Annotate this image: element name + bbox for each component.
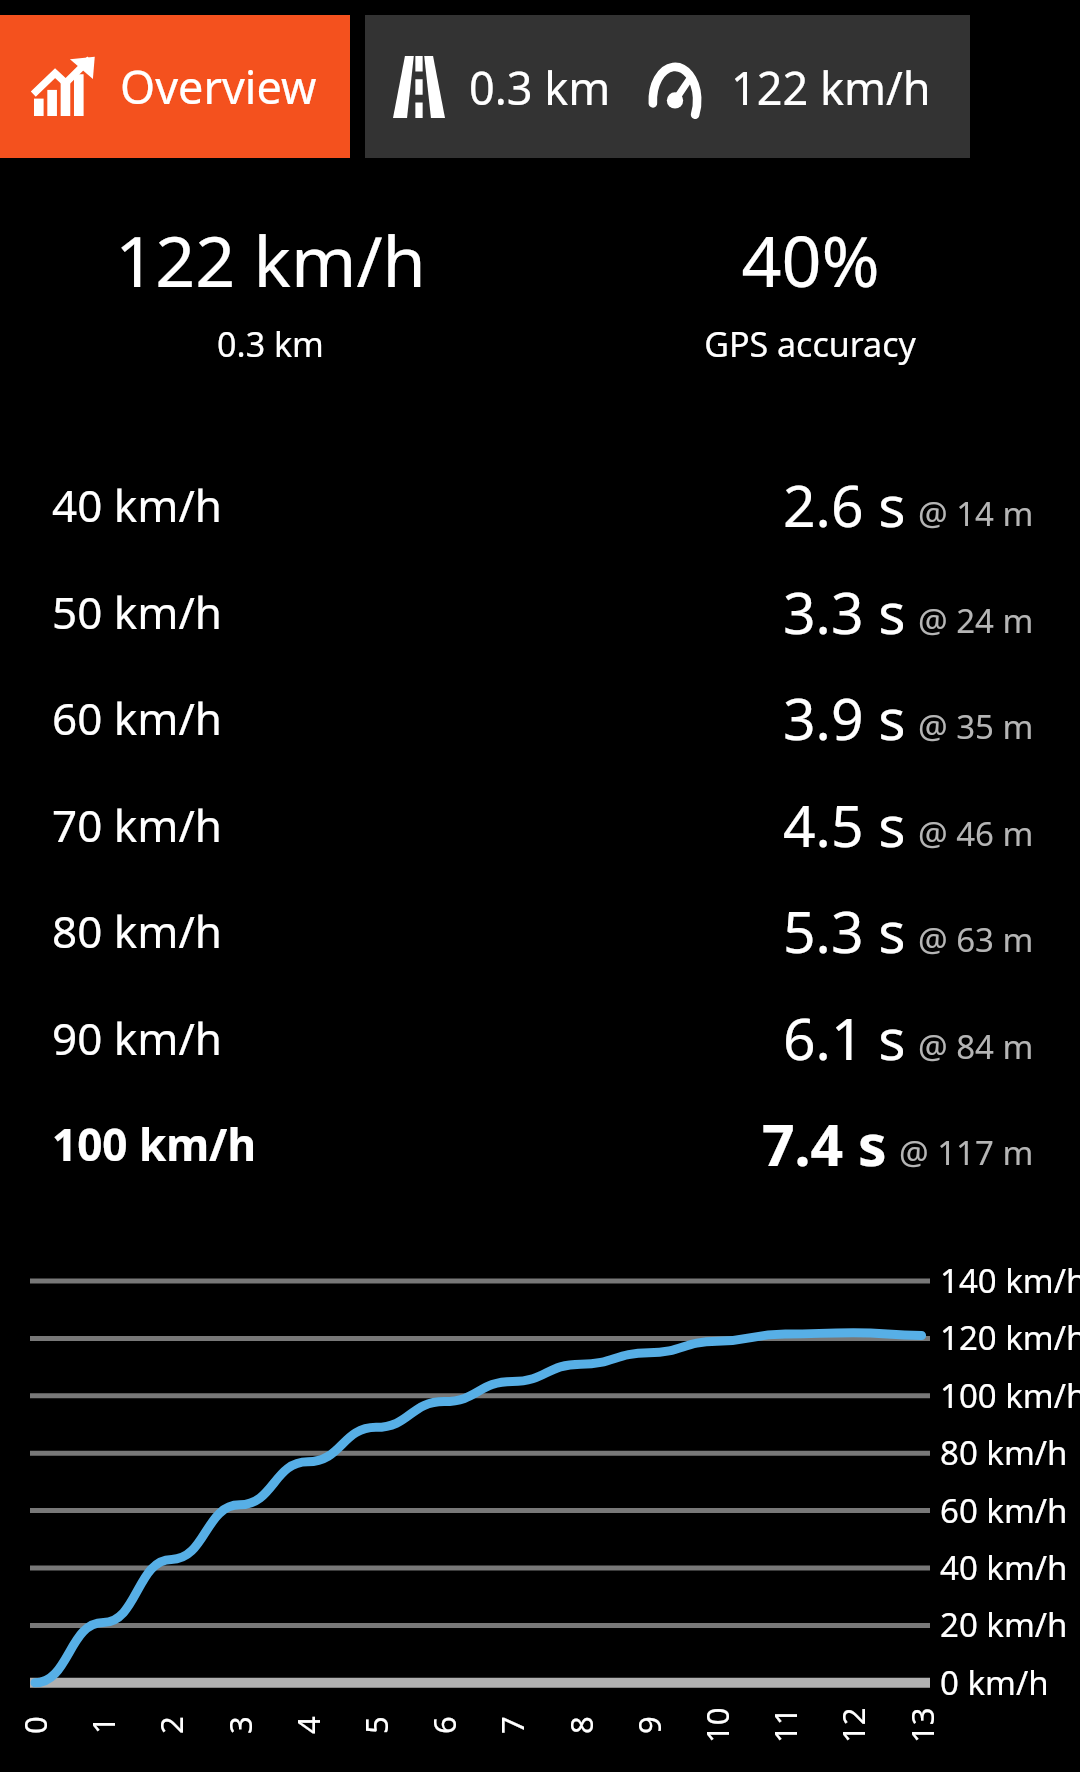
staticText: 8 xyxy=(560,1716,602,1734)
staticText: 40% xyxy=(741,212,880,307)
staticText: 120 km/h xyxy=(940,1315,1080,1360)
staticText: @ 117 m xyxy=(899,1130,1034,1175)
staticText: 40 km/h xyxy=(940,1545,1068,1590)
button[interactable]: Distance xyxy=(365,15,970,158)
staticText: 3.9 s xyxy=(783,679,906,757)
staticText: 0.3 km xyxy=(469,57,611,118)
staticText: @ 35 m xyxy=(918,704,1034,749)
staticText: 40 km/h xyxy=(52,475,222,535)
staticText: 1 xyxy=(82,1716,124,1734)
button[interactable]: 140 km/h xyxy=(0,1240,1080,1772)
staticText: 100 km/h xyxy=(52,1114,256,1174)
button[interactable]: 100 km/h xyxy=(0,1094,1080,1194)
staticText: 6.1 s xyxy=(783,999,906,1077)
staticText: 90 km/h xyxy=(52,1008,222,1068)
staticText: 5 xyxy=(355,1716,397,1734)
staticText: 3.3 s xyxy=(783,573,906,651)
button[interactable]: Overview xyxy=(0,15,350,158)
staticText: 13 xyxy=(901,1707,943,1743)
staticText: @ 24 m xyxy=(918,598,1034,643)
staticText: 70 km/h xyxy=(52,795,222,855)
button[interactable]: 90 km/h xyxy=(0,988,1080,1088)
staticText: 4 xyxy=(287,1716,329,1734)
staticText: 60 km/h xyxy=(940,1488,1068,1533)
button[interactable]: 40 km/h xyxy=(0,455,1080,555)
staticText: 60 km/h xyxy=(52,688,222,748)
staticText: 11 xyxy=(764,1707,806,1743)
other: Top speed xyxy=(645,63,705,111)
button[interactable]: 80 km/h xyxy=(0,881,1080,981)
other: Distance xyxy=(393,56,445,118)
staticText: @ 14 m xyxy=(918,491,1034,536)
staticText: 5.3 s xyxy=(783,892,906,970)
button[interactable]: 50 km/h xyxy=(0,562,1080,662)
staticText: 9 xyxy=(628,1716,670,1734)
staticText: 122 km/h xyxy=(731,57,931,118)
staticText: Overview xyxy=(120,56,317,117)
staticText: 100 km/h xyxy=(940,1373,1080,1418)
staticText: 2 xyxy=(150,1716,192,1734)
staticText: 0 km/h xyxy=(940,1660,1049,1705)
staticText: 7.4 s xyxy=(762,1105,887,1183)
staticText: 4.5 s xyxy=(783,786,906,864)
staticText: 2.6 s xyxy=(783,466,906,544)
staticText: 20 km/h xyxy=(940,1602,1068,1647)
staticText: 12 xyxy=(832,1707,874,1743)
staticText: @ 46 m xyxy=(918,811,1034,856)
staticText: 80 km/h xyxy=(940,1430,1068,1475)
staticText: @ 84 m xyxy=(918,1024,1034,1069)
staticText: 140 km/h xyxy=(940,1258,1080,1303)
staticText: 50 km/h xyxy=(52,582,222,642)
staticText: 80 km/h xyxy=(52,901,222,961)
staticText: 3 xyxy=(219,1716,261,1734)
button[interactable]: 60 km/h xyxy=(0,668,1080,768)
staticText: GPS accuracy xyxy=(704,321,916,367)
staticText: 7 xyxy=(491,1716,533,1734)
staticText: 0 xyxy=(14,1716,56,1734)
staticText: 0.3 km xyxy=(217,321,324,367)
button[interactable]: 70 km/h xyxy=(0,775,1080,875)
button[interactable]: 122 km/h xyxy=(20,212,520,392)
staticText: 6 xyxy=(423,1716,465,1734)
staticText: 122 km/h xyxy=(115,212,426,307)
button[interactable]: 40% xyxy=(560,212,1060,392)
staticText: 10 xyxy=(696,1707,738,1743)
staticText: @ 63 m xyxy=(918,917,1034,962)
